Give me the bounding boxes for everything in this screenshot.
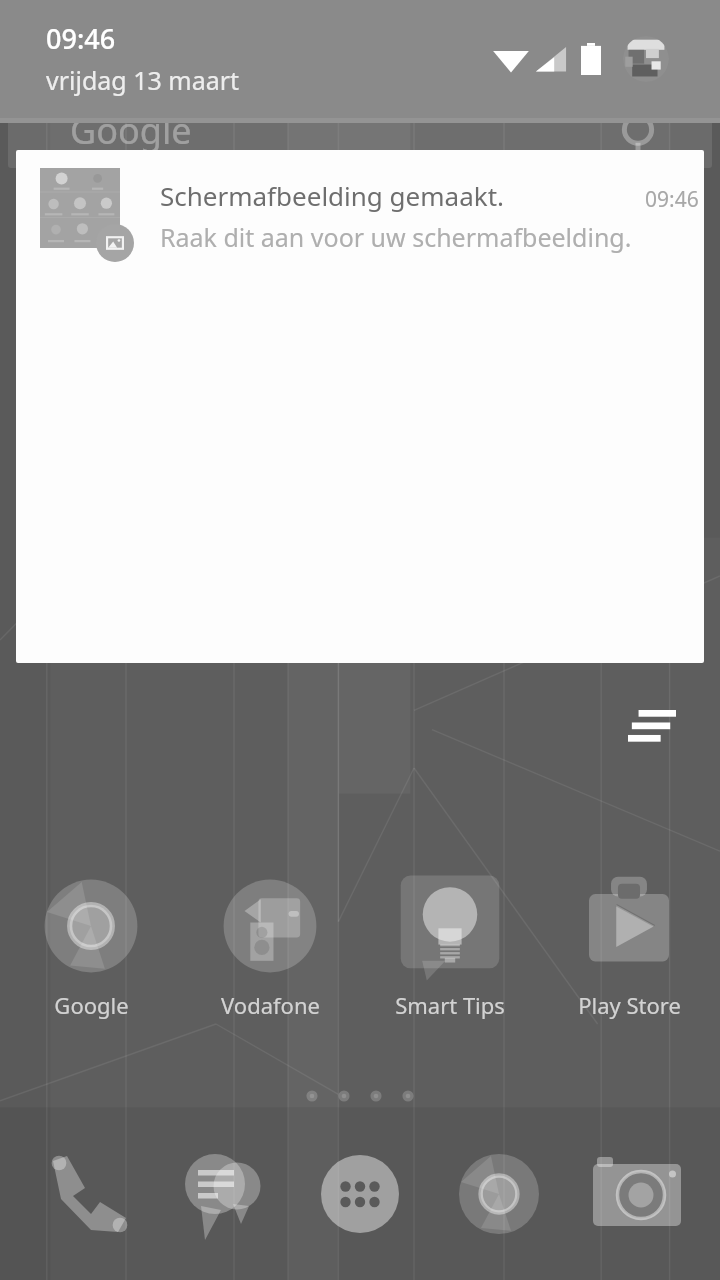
button[interactable]: Play Store [541,868,717,1020]
button[interactable]: Camera [581,1138,693,1250]
staticText: 09:46 [645,185,699,214]
button[interactable]: All apps [304,1138,416,1250]
button[interactable]: Smart Tips [362,868,538,1020]
button[interactable]: Chrome [443,1138,555,1250]
staticText: Raak dit aan voor uw schermafbeelding. [160,220,632,254]
staticText: vrijdag 13 maart [46,63,240,97]
button[interactable]: Clear all notifications [616,690,688,762]
button[interactable]: Vodafone [182,868,358,1020]
staticText: Schermafbeelding gemaakt. [160,178,504,213]
button[interactable]: Profile [623,36,669,82]
staticText: Google [54,990,129,1020]
staticText: 09:46 [46,20,116,57]
button[interactable]: Messages [165,1138,277,1250]
button[interactable]: Google [8,100,712,168]
staticText: Vodafone [221,990,320,1020]
button[interactable]: Schermafbeelding gemaakt. [16,150,704,663]
staticText: Play Store [578,990,681,1020]
button[interactable]: Google [3,868,179,1020]
button[interactable]: Phone [27,1138,139,1250]
staticText: Smart Tips [395,990,505,1020]
staticText: Google [70,106,192,155]
